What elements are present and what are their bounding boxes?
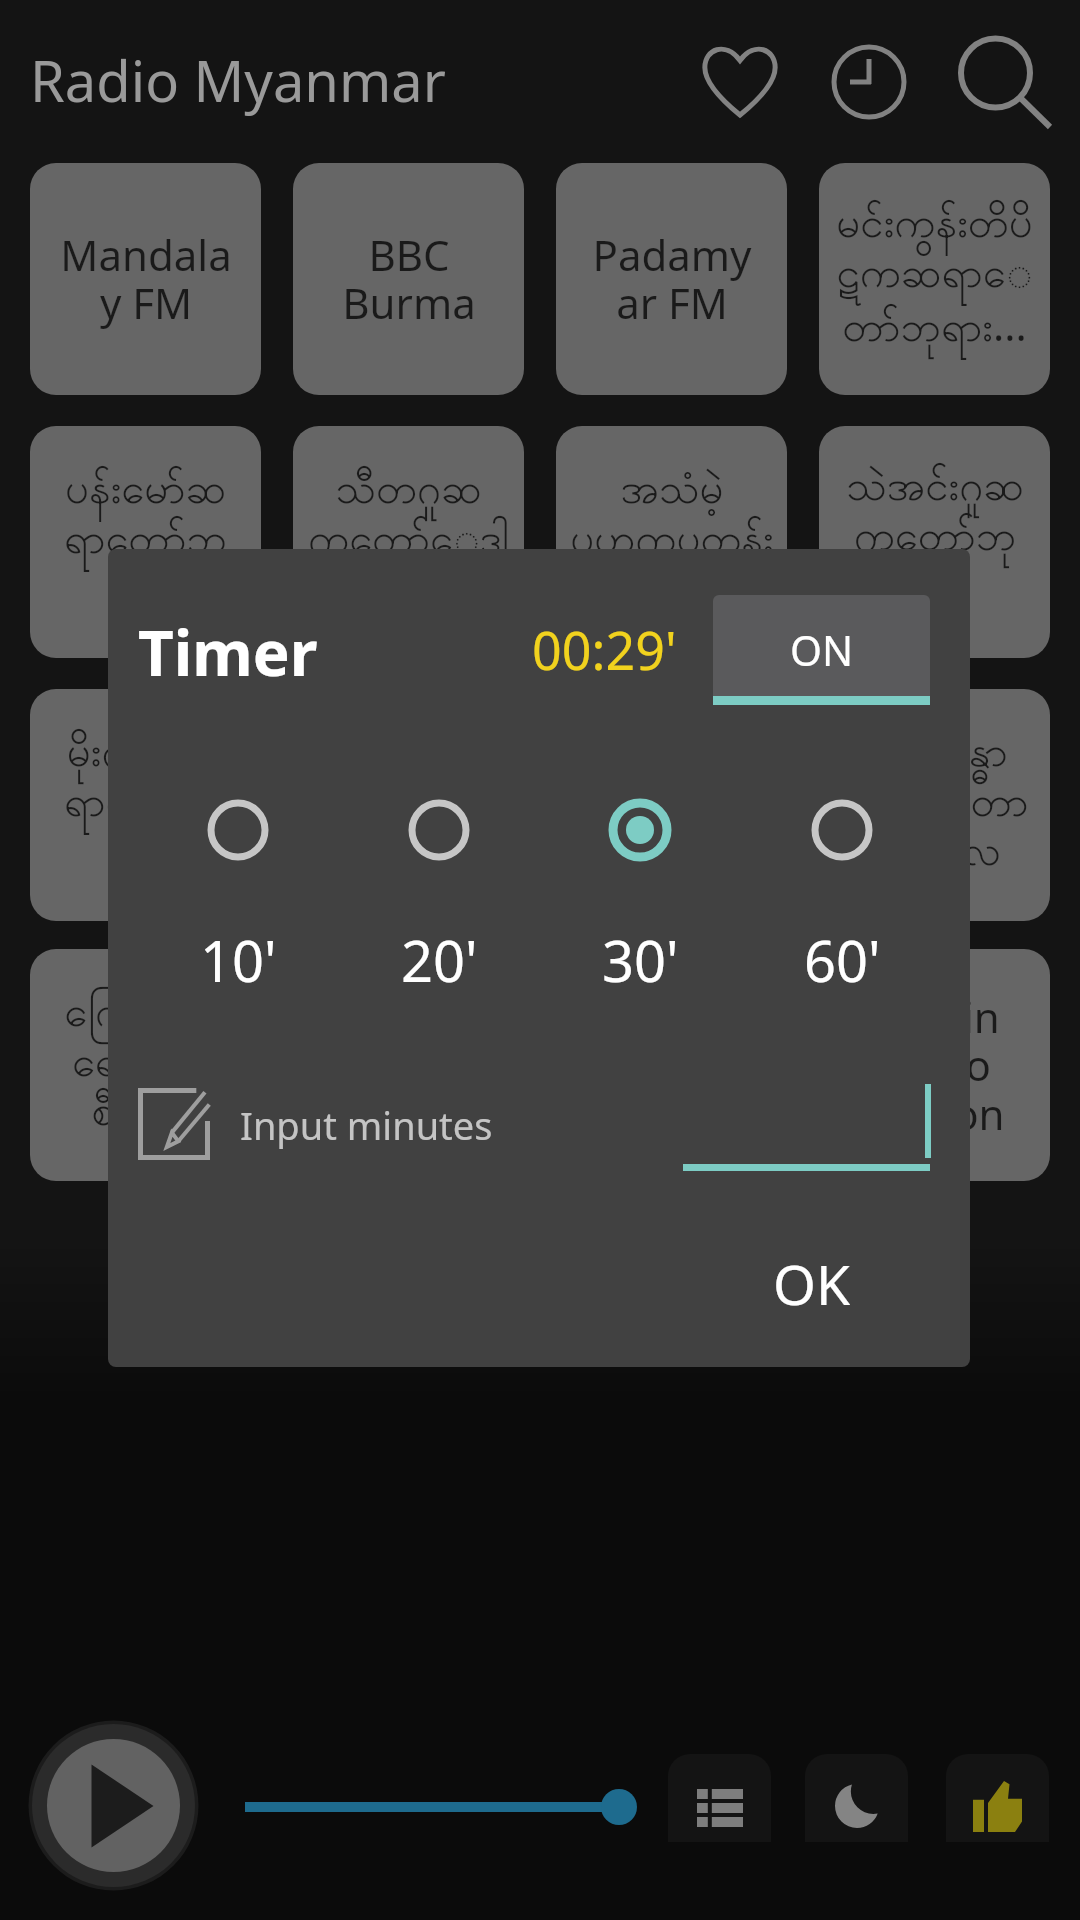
button[interactable]: မင်းကွန်းတိပိ ဋကဆရာေ တာ်ဘုရား... (819, 163, 1050, 395)
button[interactable]: Padamy ar FM (556, 163, 787, 395)
button[interactable]: Like (946, 1754, 1049, 1842)
button[interactable]: အသံမဲ့ ပဟကပတန်း ထ (556, 426, 787, 658)
button[interactable]: 60' (782, 790, 902, 990)
button[interactable]: ပန်းမော်ဆ ရာတော်ဘ ရာ (30, 426, 261, 658)
button[interactable]: Edit minutes (134, 1084, 214, 1164)
staticText: 10' (200, 922, 277, 990)
button[interactable]: Minutes input (678, 1069, 938, 1179)
staticText: Padamy ar FM (592, 226, 752, 332)
button[interactable]: သဲအင်းဂူဆ ကတော်ဘု ရ... (819, 426, 1050, 658)
staticText: 20' (401, 922, 478, 990)
button[interactable]: Volume (230, 1777, 640, 1837)
button[interactable]: Favorites (686, 26, 794, 134)
button[interactable]: 30' (580, 790, 700, 990)
button[interactable]: 20' (379, 790, 499, 990)
staticText: သဲအင်းဂူဆ ကတော်ဘု ရ... (846, 459, 1024, 625)
button[interactable]: ဝိဇ္ဇာဓိုရ်ဆ ရာတော်ဘု ရား (556, 689, 787, 921)
button[interactable]: Mandala y FM (30, 163, 261, 395)
button[interactable]: 10' (178, 790, 298, 990)
button[interactable]: Thazin Radio Station (819, 949, 1050, 1181)
button[interactable]: သီတဂူဆ ကတော်ေဒါ က (293, 426, 524, 658)
staticText: သီတဂူဆ ကတော်ေဒါ က (308, 462, 509, 622)
staticText: ဝိဇ္ဇာဓိုရ်ဆ ရာတော်ဘု ရား (590, 725, 753, 885)
button[interactable]: OK (752, 1228, 872, 1338)
staticText: Radio Myanmar (30, 42, 446, 118)
button[interactable]: မဟာဂန္ဓာ ရုံဆရာတော ဘုရားလ (819, 689, 1050, 921)
button[interactable]: BBC Burma (293, 163, 524, 395)
staticText: OK (773, 1246, 851, 1321)
staticText: Mandala y FM (60, 226, 232, 332)
button[interactable]: ON (713, 595, 930, 705)
staticText: 60' (804, 922, 881, 990)
button[interactable]: Sleep timer (805, 1754, 908, 1842)
staticText: အသံမဲ့ ပဟကပတန်း ထ (570, 462, 774, 622)
staticText: မဟာဂန္ဓာ ရုံဆရာတော ဘုရားလ (841, 725, 1029, 885)
staticText: ဓမ္မဒူတဆ ရာတော်ဘု ရား (327, 725, 490, 885)
staticText: 30' (602, 922, 679, 990)
button[interactable]: ဓမ္မဒူတဆ ရာတော်ဘု ရား (293, 689, 524, 921)
staticText: ပန်းမော်ဆ ရာတော်ဘ ရာ (64, 462, 227, 622)
staticText: ကြေးတော် ရေဒီယိုအ စီအစဉ် (64, 985, 228, 1145)
staticText: 00:29' (532, 614, 677, 685)
button[interactable]: Play (28, 1720, 199, 1891)
staticText: Thazin Radio Station (865, 988, 1005, 1143)
staticText: BBC Burma (342, 226, 476, 332)
button[interactable]: Sleep timer (815, 28, 923, 136)
button[interactable]: မြန်မာ့အ သံရေဒီ ယို (556, 949, 787, 1181)
button[interactable]: Search (944, 22, 1060, 138)
button[interactable]: ရွှေမန်းဖိုး တုတ်မောင် မောင် (293, 949, 524, 1181)
button[interactable]: မိုးကုတ်ဆ ရာတော်ဘ ရား (30, 689, 261, 921)
button[interactable]: ကြေးတော် ရေဒီယိုအ စီအစဉ် (30, 949, 261, 1181)
staticText: Input minutes (240, 1099, 493, 1151)
staticText: ရွှေမန်းဖိုး တုတ်မောင် မောင် (324, 985, 494, 1145)
staticText: Timer (138, 610, 318, 694)
staticText: မင်းကွန်းတိပိ ဋကဆရာေ တာ်ဘုရား... (836, 196, 1033, 362)
staticText: မိုးကုတ်ဆ ရာတော်ဘ ရား (64, 725, 227, 885)
button[interactable]: Playlist (668, 1754, 771, 1842)
staticText: ON (790, 622, 854, 678)
